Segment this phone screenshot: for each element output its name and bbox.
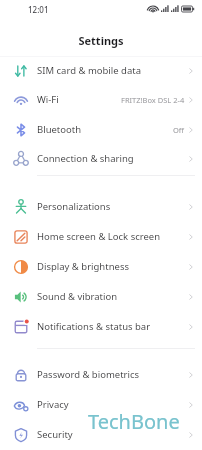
staticText: Privacy <box>37 398 69 411</box>
button[interactable]: Bluetooth <box>0 115 202 144</box>
staticText: Personalizations <box>37 200 111 213</box>
staticText: Wi-Fi <box>37 93 59 106</box>
staticText: Password & biometrics <box>37 368 140 381</box>
staticText: Display & brightness <box>37 260 129 273</box>
staticText: SIM card & mobile data <box>37 64 142 77</box>
button[interactable]: SIM card and mobile data <box>0 56 202 85</box>
button[interactable]: Notifications and status bar <box>0 312 202 341</box>
button[interactable]: Wi-Fi <box>0 85 202 114</box>
staticText: TechBone <box>88 408 180 435</box>
button[interactable]: Display and brightness <box>0 252 202 281</box>
button[interactable]: Privacy <box>0 390 202 419</box>
button[interactable]: Security <box>0 420 202 449</box>
staticText: Security <box>37 428 73 441</box>
button[interactable]: Personalizations <box>0 192 202 221</box>
staticText: Off <box>173 125 185 135</box>
button[interactable]: Home screen and Lock screen <box>0 222 202 251</box>
staticText: Sound & vibration <box>37 290 118 303</box>
staticText: 12:01 <box>28 4 49 15</box>
button[interactable]: Password and biometrics <box>0 360 202 389</box>
staticText: Notifications & status bar <box>37 320 151 333</box>
button[interactable]: Connection and sharing <box>0 144 202 173</box>
staticText: Home screen & Lock screen <box>37 230 161 243</box>
staticText: Bluetooth <box>37 123 82 136</box>
staticText: FRITZ!Box DSL 2-4 <box>121 95 185 105</box>
staticText: Settings <box>0 33 202 48</box>
button[interactable]: Sound and vibration <box>0 282 202 311</box>
staticText: Connection & sharing <box>37 152 134 165</box>
